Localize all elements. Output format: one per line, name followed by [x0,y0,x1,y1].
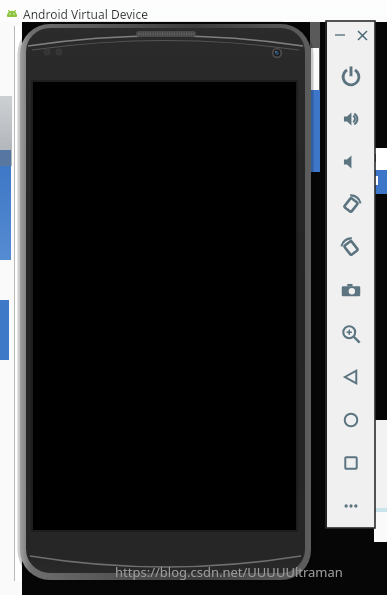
button[interactable]: Volume down [327,140,375,183]
button[interactable]: Overview [327,441,375,484]
button[interactable]: Close [352,25,372,45]
button[interactable]: Home [327,398,375,441]
button[interactable]: Rotate left [327,183,375,226]
button[interactable]: Minimize [330,25,350,45]
button[interactable]: Zoom [327,312,375,355]
button[interactable]: Power [327,54,375,97]
button[interactable]: More [327,484,375,527]
button[interactable]: Volume up [327,97,375,140]
staticText: https://blog.csdn.net/UUUUUltraman [115,563,343,581]
button[interactable]: Back [327,355,375,398]
staticText: Android Virtual Device [23,6,148,22]
button[interactable]: Rotate right [327,226,375,269]
button[interactable]: Take screenshot [327,269,375,312]
